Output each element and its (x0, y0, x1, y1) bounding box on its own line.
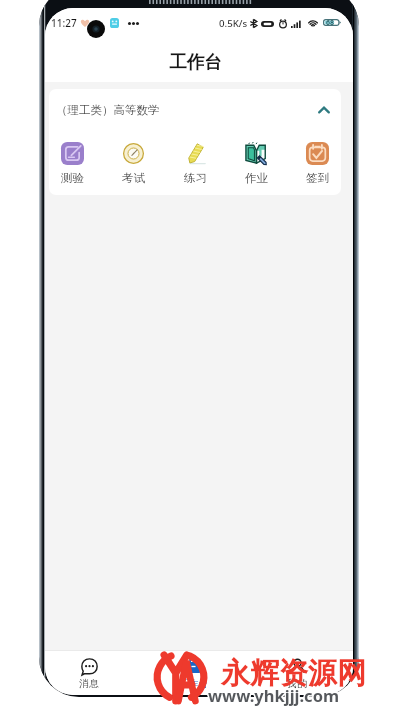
staticText: www.yhkjjj.com (209, 684, 341, 706)
staticText: www.yhkjjj.com (208, 683, 340, 705)
staticText: 工作台 (169, 51, 222, 73)
staticText: www.yhkjjj.com (207, 685, 339, 707)
other: More (128, 22, 139, 25)
button[interactable]: 工作台 (167, 651, 219, 690)
button[interactable]: 签到 (294, 131, 341, 185)
staticText: 测验 (61, 171, 84, 185)
staticText: 工作台 (178, 677, 208, 690)
staticText: 永辉资源网 (221, 655, 366, 692)
staticText: www.yhkjjj.com (208, 684, 340, 706)
button[interactable]: 作业 (233, 131, 280, 185)
staticText: www.yhkjjj.com (209, 685, 341, 707)
staticText: www.yhkjjj.com (208, 685, 340, 707)
staticText: www.yhkjjj.com (209, 683, 341, 705)
staticText: 我的 (287, 677, 307, 690)
staticText: 11:27 (51, 16, 77, 30)
staticText: 消息 (79, 677, 99, 690)
other: Collapse (318, 106, 330, 115)
staticText: www.yhkjjj.com (207, 684, 339, 706)
staticText: 练习 (184, 171, 207, 185)
staticText: 考试 (122, 171, 145, 185)
staticText: www.yhkjjj.com (207, 683, 339, 705)
staticText: 0.5K/s (219, 17, 248, 30)
button[interactable]: 消息 (63, 651, 115, 690)
staticText: 68 (326, 18, 335, 25)
staticText: 作业 (245, 171, 268, 185)
button[interactable]: 我的 (271, 651, 323, 690)
button[interactable]: 测验 (49, 131, 96, 185)
button[interactable]: 练习 (172, 131, 219, 185)
button[interactable]: （理工类）高等数学 (49, 89, 341, 131)
button[interactable]: 考试 (110, 131, 157, 185)
staticText: （理工类）高等数学 (56, 103, 160, 117)
staticText: 签到 (306, 171, 329, 185)
